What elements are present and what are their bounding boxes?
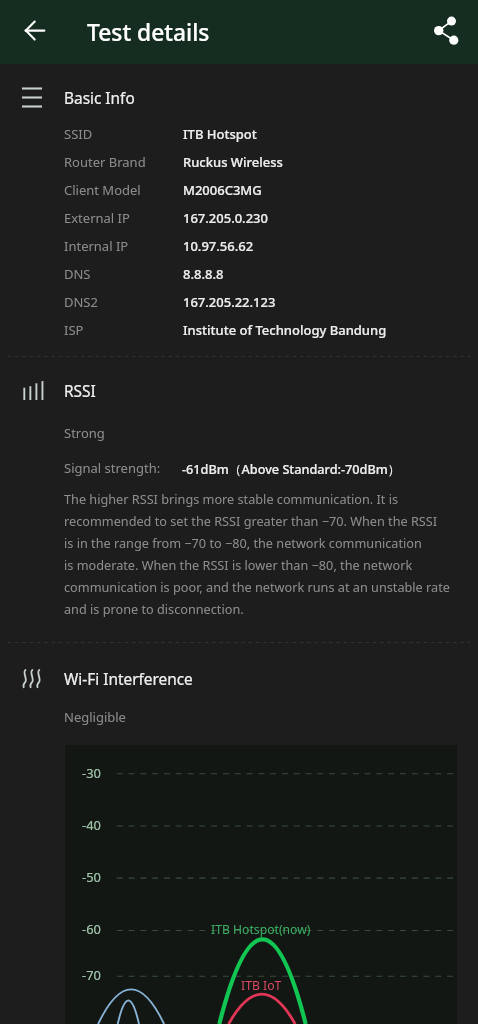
button[interactable]: Share (425, 10, 469, 54)
button[interactable]: ISP (0, 316, 478, 344)
button[interactable]: External IP (0, 204, 478, 232)
staticText: Internal IP (64, 237, 129, 255)
staticText: 167.205.0.230 (183, 209, 268, 227)
staticText: Client Model (64, 181, 141, 199)
staticText: Ruckus Wireless (183, 153, 283, 171)
staticText: SSID (64, 125, 93, 143)
staticText: ISP (64, 321, 84, 339)
staticText: M2006C3MG (183, 181, 262, 199)
staticText: 10.97.56.62 (183, 237, 254, 255)
staticText: Basic Info (64, 88, 135, 109)
staticText: -60 (82, 920, 101, 938)
staticText: External IP (64, 209, 130, 227)
button[interactable]: DNS (0, 260, 478, 288)
staticText: DNS (64, 265, 91, 283)
staticText: RSSI (64, 381, 96, 402)
staticText: DNS2 (64, 293, 98, 311)
staticText: Router Brand (64, 153, 146, 171)
staticText: Wi-Fi Interference (64, 669, 193, 690)
button[interactable]: Internal IP (0, 232, 478, 260)
staticText: ITB Hotspot (183, 125, 257, 143)
button[interactable]: Router Brand (0, 148, 478, 176)
staticText: Test details (87, 17, 210, 48)
staticText: Negligible (64, 708, 126, 726)
button[interactable]: Client Model (0, 176, 478, 204)
staticText: 8.8.8.8 (183, 265, 224, 283)
staticText: 167.205.22.123 (183, 293, 276, 311)
staticText: ITB Hotspot(now) (211, 921, 311, 938)
staticText: The higher RSSI brings more stable commu… (64, 490, 464, 617)
staticText: -61dBm（Above Standard:-70dBm） (182, 460, 401, 477)
staticText: -50 (82, 868, 101, 886)
staticText: ITB IoT (241, 977, 282, 994)
button[interactable]: Back (13, 10, 57, 54)
staticText: -40 (82, 816, 101, 834)
button[interactable]: SSID (0, 120, 478, 148)
staticText: Strong (64, 424, 105, 442)
staticText: Institute of Technology Bandung (183, 321, 387, 339)
staticText: -30 (82, 764, 101, 782)
button[interactable]: DNS2 (0, 288, 478, 316)
staticText: -70 (82, 966, 101, 984)
staticText: Signal strength: (64, 459, 161, 477)
